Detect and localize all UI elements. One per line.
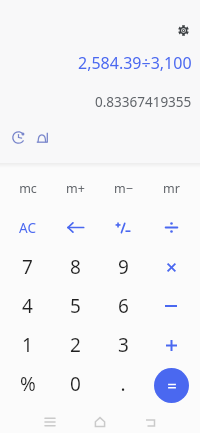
button[interactable]: . — [99, 364, 147, 403]
button[interactable]: Backspace — [51, 208, 99, 247]
staticText: % — [20, 371, 36, 397]
button[interactable]: 8 — [51, 247, 99, 286]
button[interactable]: mr — [147, 168, 195, 208]
staticText: . — [120, 371, 126, 397]
button[interactable]: 7 — [4, 247, 51, 286]
staticText: 3 — [118, 332, 129, 358]
staticText: mc — [19, 180, 37, 197]
button[interactable]: AC — [4, 208, 51, 247]
button[interactable]: 0 — [51, 364, 99, 403]
button[interactable]: 5 — [51, 286, 99, 325]
button[interactable]: History — [6, 125, 30, 149]
button[interactable]: Add — [147, 325, 195, 364]
staticText: 2,584.39÷3,100 — [78, 52, 192, 74]
staticText: 4 — [22, 293, 33, 319]
button[interactable]: Subtract — [147, 286, 195, 325]
button[interactable]: 9 — [99, 247, 147, 286]
button[interactable]: Equals — [154, 368, 189, 403]
button[interactable]: Divide — [147, 208, 195, 247]
button[interactable]: m+ — [51, 168, 99, 208]
button[interactable]: mc — [4, 168, 51, 208]
button[interactable]: 2 — [51, 325, 99, 364]
button[interactable]: 3 — [99, 325, 147, 364]
button[interactable]: m− — [99, 168, 147, 208]
staticText: 5 — [70, 293, 81, 319]
button[interactable]: Toggle sign — [99, 208, 147, 247]
staticText: m− — [114, 180, 133, 197]
button[interactable]: Back — [125, 410, 175, 433]
staticText: mr — [163, 180, 180, 197]
button[interactable]: Multiply — [147, 247, 195, 286]
button[interactable]: 4 — [4, 286, 51, 325]
button[interactable]: Home — [75, 410, 125, 433]
staticText: 6 — [118, 293, 129, 319]
button[interactable]: Recents — [25, 410, 75, 433]
button[interactable]: % — [4, 364, 51, 403]
staticText: 1 — [22, 332, 33, 358]
staticText: 0 — [70, 371, 81, 397]
staticText: 2 — [70, 332, 81, 358]
staticText: 9 — [118, 254, 129, 280]
button[interactable]: 6 — [99, 286, 147, 325]
button[interactable]: Settings — [173, 20, 193, 40]
staticText: 0.83367419355 — [95, 93, 192, 111]
staticText: AC — [19, 219, 36, 237]
staticText: 8 — [70, 254, 81, 280]
button[interactable]: 1 — [4, 325, 51, 364]
staticText: m+ — [66, 180, 85, 197]
button[interactable]: Functions — [30, 125, 54, 149]
staticText: 7 — [22, 254, 33, 280]
